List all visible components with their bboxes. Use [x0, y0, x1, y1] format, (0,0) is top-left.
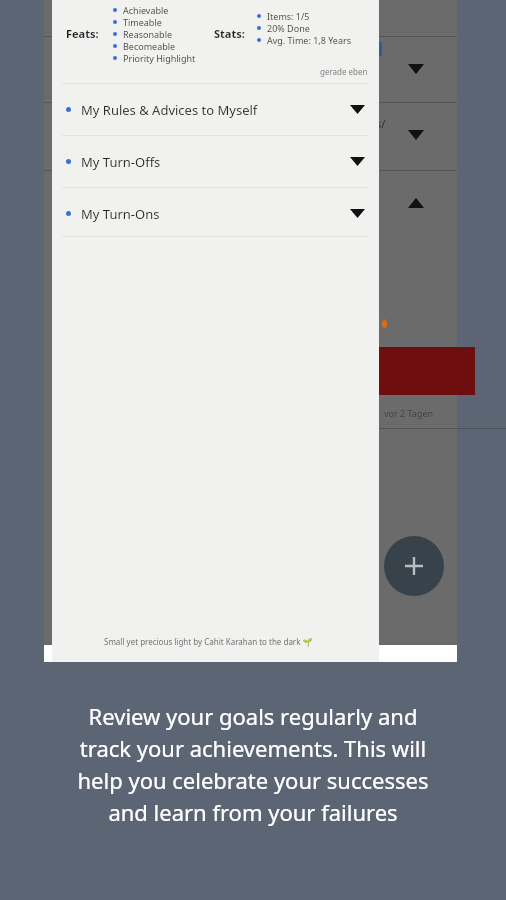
button[interactable]: Add — [384, 536, 444, 596]
staticText: s/ — [376, 116, 386, 131]
staticText: and learn from your failures — [12, 797, 494, 827]
staticText: Becomeable — [123, 40, 176, 52]
staticText: Feats: — [66, 26, 99, 41]
button[interactable]: My Rules & Advices to Myself — [52, 84, 379, 135]
staticText: track your achievements. This will — [12, 733, 494, 763]
staticText: Small yet precious light by Cahit Karaha… — [104, 636, 313, 647]
staticText: Priority Highlight — [123, 52, 196, 64]
staticText: Reasonable — [123, 28, 173, 40]
button[interactable]: My Turn-Offs — [52, 136, 379, 187]
staticText: Avg. Time: 1,8 Years — [267, 34, 352, 46]
staticText: My Rules & Advices to Myself — [81, 101, 258, 119]
staticText: Stats: — [214, 26, 245, 41]
staticText: Timeable — [123, 16, 162, 28]
staticText: My Turn-Offs — [81, 153, 161, 171]
staticText: Items: 1/5 — [267, 10, 310, 22]
staticText: help you celebrate your successes — [12, 765, 494, 795]
button[interactable]: My Turn-Ons — [52, 188, 379, 239]
staticText: vor 2 Tagen — [384, 407, 434, 419]
staticText: My Turn-Ons — [81, 205, 160, 223]
staticText: Achievable — [123, 4, 169, 16]
staticText: gerade eben — [320, 66, 368, 77]
staticText: 20% Done — [267, 22, 310, 34]
staticText: Review your goals regularly and — [12, 701, 494, 731]
